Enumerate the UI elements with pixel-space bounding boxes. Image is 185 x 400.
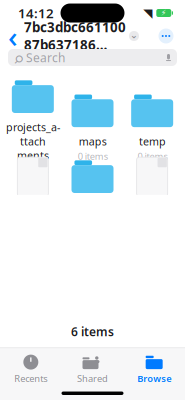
- button[interactable]: Recents: [0, 350, 62, 386]
- staticText: projects_attach ments: [6, 120, 60, 162]
- button[interactable]: maps: [63, 89, 121, 162]
- button[interactable]: temp: [123, 89, 181, 162]
- staticText: ‹: [8, 16, 18, 55]
- staticText: 7bc3dbc66110087b637186…: [24, 18, 126, 54]
- staticText: 6 items: [71, 324, 114, 340]
- staticText: ◥: [143, 6, 152, 20]
- button[interactable]: Folder options: [126, 28, 142, 44]
- button[interactable]: ⌕: [8, 49, 177, 66]
- staticText: Shared: [77, 372, 108, 384]
- staticText: ⌄: [130, 30, 138, 40]
- button[interactable]: Back: [4, 26, 22, 46]
- button[interactable]: Shared: [62, 350, 123, 386]
- staticText: Search: [26, 49, 65, 65]
- staticText: temp: [139, 134, 166, 148]
- staticText: ⚡︎: [161, 8, 167, 18]
- staticText: 0 items: [137, 150, 167, 162]
- staticText: 0 items: [18, 164, 48, 176]
- button[interactable]: projects_attach ments: [4, 75, 62, 176]
- button[interactable]: Browse: [123, 350, 185, 386]
- staticText: Browse: [137, 372, 171, 384]
- staticText: maps: [78, 134, 106, 148]
- button[interactable]: projects_db.sqli te: [123, 156, 181, 270]
- button[interactable]: download_man ager.sqlite: [4, 156, 62, 270]
- staticText: 0 items: [77, 150, 107, 162]
- staticText: ⌕: [14, 43, 23, 72]
- button[interactable]: 77ccae87a39e4 32887…82746: [63, 155, 121, 271]
- button[interactable]: More: [155, 25, 177, 47]
- staticText: 14:12: [18, 4, 54, 22]
- staticText: Recents: [14, 372, 47, 384]
